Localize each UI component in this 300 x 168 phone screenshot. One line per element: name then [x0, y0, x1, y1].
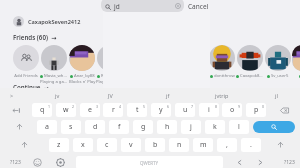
button[interactable]: jvtrip: [200, 89, 244, 101]
button[interactable]: s: [61, 120, 81, 134]
button[interactable]: g: [133, 120, 153, 134]
staticText: i: [208, 105, 210, 115]
staticText: a: [45, 122, 49, 132]
button[interactable]: Keyboard settings: [49, 155, 71, 168]
button[interactable]: z: [49, 138, 69, 152]
button[interactable]: Shift: [13, 138, 35, 152]
button[interactable]: jv: [35, 89, 79, 101]
other: Search: [105, 4, 111, 10]
button[interactable]: q: [32, 103, 52, 117]
button[interactable]: Tab: [5, 103, 27, 117]
button[interactable]: p: [246, 103, 266, 117]
button[interactable]: x: [73, 138, 93, 152]
button[interactable]: jl: [254, 89, 298, 101]
staticText: g: [141, 122, 146, 132]
button[interactable]: Search: [101, 0, 184, 12]
button[interactable]: Friends (60) →: [13, 33, 57, 41]
button[interactable]: Sv_user5: [264, 45, 292, 79]
staticText: jl: [275, 92, 278, 99]
staticText: jd: [114, 2, 120, 11]
staticText: j: [190, 122, 192, 132]
button[interactable]: v: [121, 138, 141, 152]
staticText: 6: [167, 104, 170, 109]
button[interactable]: dontthrow: [208, 45, 236, 79]
staticText: 1: [48, 104, 51, 109]
staticText: Playing a game: [40, 79, 68, 85]
button[interactable]: Continue →: [13, 83, 49, 91]
button[interactable]: Anar_by88: [68, 45, 96, 85]
button[interactable]: h: [157, 120, 177, 134]
button[interactable]: QWERTY: [76, 156, 223, 168]
button[interactable]: Search: [253, 121, 295, 133]
button[interactable]: t: [127, 103, 147, 117]
button[interactable]: d: [85, 120, 105, 134]
staticText: n: [177, 140, 182, 150]
button[interactable]: k: [205, 120, 225, 134]
button[interactable]: .: [241, 138, 261, 152]
staticText: f: [118, 122, 121, 132]
button[interactable]: i: [199, 103, 219, 117]
button[interactable]: n: [169, 138, 189, 152]
staticText: Caxapok8e…: [240, 73, 264, 79]
staticText: w: [63, 105, 69, 115]
staticText: o: [230, 105, 235, 115]
staticText: u: [183, 105, 188, 115]
button[interactable]: >: [0, 89, 34, 101]
button[interactable]: w: [56, 103, 76, 117]
staticText: ?123: [284, 159, 295, 166]
staticText: m: [200, 140, 207, 150]
button[interactable]: ,: [217, 138, 237, 152]
button[interactable]: e: [80, 103, 100, 117]
button[interactable]: ?123: [276, 155, 300, 168]
button[interactable]: o: [222, 103, 242, 117]
button[interactable]: a: [37, 120, 57, 134]
staticText: t: [136, 105, 139, 115]
staticText: jv: [55, 92, 60, 99]
button[interactable]: f: [109, 120, 129, 134]
button[interactable]: Move cursor left: [228, 155, 250, 168]
staticText: QWERTY: [140, 160, 159, 166]
button[interactable]: k: [292, 45, 300, 79]
staticText: p: [254, 105, 259, 115]
staticText: y: [159, 105, 163, 115]
button[interactable]: Roblox_fan: [96, 45, 124, 85]
button[interactable]: Caps lock: [8, 120, 30, 134]
button[interactable]: y: [151, 103, 171, 117]
button[interactable]: l: [229, 120, 249, 134]
staticText: 7: [191, 104, 194, 109]
staticText: JV: [108, 92, 113, 99]
button[interactable]: Add Friends: [12, 45, 40, 79]
button[interactable]: Backspace: [273, 103, 295, 117]
staticText: v: [129, 140, 133, 150]
button[interactable]: CaxapokSeven2412: [13, 16, 81, 27]
staticText: 9: [238, 104, 241, 109]
button[interactable]: j: [181, 120, 201, 134]
button[interactable]: c: [97, 138, 117, 152]
button[interactable]: Search: [103, 0, 210, 168]
staticText: q: [40, 105, 45, 115]
button[interactable]: u: [175, 103, 195, 117]
staticText: x: [81, 140, 85, 150]
button[interactable]: b: [145, 138, 165, 152]
button[interactable]: jf: [146, 89, 190, 101]
button[interactable]: ?123: [2, 155, 28, 168]
button[interactable]: JV: [88, 89, 132, 101]
button[interactable]: m: [193, 138, 213, 152]
staticText: jvtrip: [215, 92, 229, 99]
button[interactable]: Emoji: [26, 155, 48, 168]
button[interactable]: Cancel: [188, 0, 209, 12]
button[interactable]: Shift: [269, 138, 291, 152]
button[interactable]: Mavia_wh15: [40, 45, 68, 85]
button[interactable]: Move cursor right: [249, 155, 271, 168]
button[interactable]: r: [103, 103, 123, 117]
staticText: l: [238, 122, 240, 132]
button[interactable]: Clear text: [175, 3, 181, 9]
button[interactable]: Caxapok8e…: [236, 45, 264, 79]
staticText: Mavia_wh15: [44, 73, 68, 79]
